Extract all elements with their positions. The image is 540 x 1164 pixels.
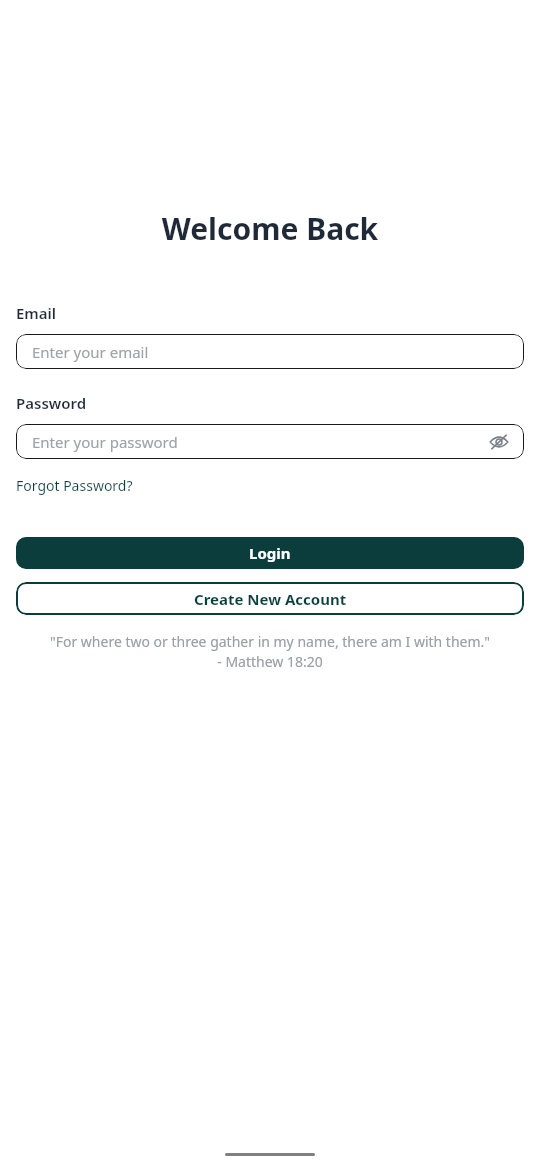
staticText: Welcome Back: [0, 208, 540, 249]
button[interactable]: Create New Account: [16, 582, 524, 615]
staticText: Enter your email: [32, 342, 149, 362]
staticText: Password: [16, 393, 87, 413]
staticText: Forgot Password?: [16, 476, 133, 495]
button[interactable]: Login: [16, 537, 524, 569]
staticText: Email: [16, 303, 57, 323]
staticText: Create New Account: [194, 589, 347, 609]
staticText: Login: [249, 543, 291, 563]
button[interactable]: Enter your password: [16, 424, 524, 459]
staticText: Enter your password: [32, 432, 178, 452]
button[interactable]: Enter your email: [16, 334, 524, 369]
button[interactable]: Forgot Password?: [16, 476, 133, 495]
staticText: "For where two or three gather in my nam…: [20, 632, 520, 671]
button[interactable]: Show password: [486, 429, 512, 455]
